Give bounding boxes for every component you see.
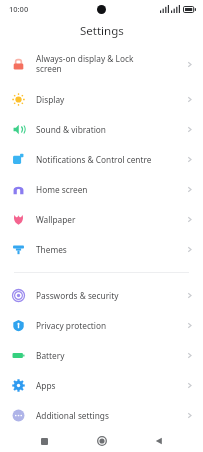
staticText: Passwords & security <box>36 290 119 301</box>
button[interactable]: Passwords & security <box>0 280 203 310</box>
staticText: Wallpaper <box>36 214 76 225</box>
staticText: Privacy protection <box>36 320 107 331</box>
button[interactable]: Notifications & Control centre <box>0 144 203 174</box>
button[interactable]: Wallpaper <box>0 204 203 234</box>
staticText: Always-on display & Lock screen <box>36 53 134 75</box>
button[interactable]: Always-on display & Lock screen <box>0 44 203 84</box>
staticText: Apps <box>36 380 56 391</box>
staticText: Notifications & Control centre <box>36 154 152 165</box>
button[interactable]: Home screen <box>0 174 203 204</box>
staticText: Home screen <box>36 184 88 195</box>
button[interactable]: Sound & vibration <box>0 114 203 144</box>
staticText: Additional settings <box>36 410 109 421</box>
button[interactable]: Additional settings <box>0 400 203 430</box>
staticText: Display <box>36 94 65 105</box>
staticText: 10:00 <box>9 4 29 14</box>
staticText: Battery <box>36 350 65 361</box>
button[interactable]: Back <box>145 430 173 452</box>
staticText: Sound & vibration <box>36 124 106 135</box>
staticText: Themes <box>36 244 67 255</box>
button[interactable]: Display <box>0 84 203 114</box>
button[interactable]: Themes <box>0 234 203 264</box>
button[interactable]: Battery <box>0 340 203 370</box>
button[interactable]: Apps <box>0 370 203 400</box>
staticText: Settings <box>80 23 124 39</box>
button[interactable]: Privacy protection <box>0 310 203 340</box>
button[interactable]: Home <box>88 430 116 452</box>
button[interactable]: Recent apps <box>30 430 58 452</box>
